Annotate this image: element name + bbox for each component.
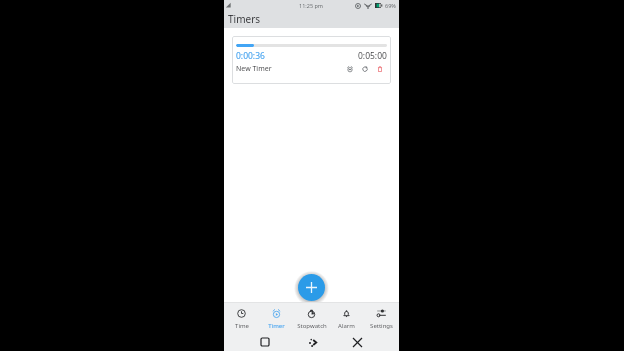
button[interactable]: Delete timer <box>374 63 386 75</box>
staticText: Timers <box>228 12 261 26</box>
staticText: New Timer <box>236 64 272 74</box>
staticText: 0:05:00 <box>358 50 387 62</box>
staticText: Settings <box>370 322 393 330</box>
button[interactable]: Add timer <box>298 274 325 301</box>
button[interactable]: Timers <box>224 11 399 28</box>
button[interactable]: Stopwatch <box>294 302 329 333</box>
staticText: Alarm <box>338 322 355 330</box>
button[interactable]: Close <box>342 333 372 351</box>
button[interactable]: Reset timer <box>359 63 371 75</box>
button[interactable]: Recents <box>250 333 280 351</box>
button[interactable]: Home <box>297 333 327 351</box>
staticText: 69% <box>385 2 396 9</box>
staticText: 0:00:36 <box>236 50 265 62</box>
staticText: Stopwatch <box>297 322 327 330</box>
button[interactable]: Time <box>224 302 259 333</box>
staticText: 11:25 pm <box>299 2 324 9</box>
staticText: Timer <box>268 322 285 330</box>
button[interactable]: Settings <box>364 302 399 333</box>
staticText: Time <box>235 322 249 330</box>
button[interactable]: Timer <box>259 302 294 333</box>
button[interactable]: 0:00:36 <box>232 36 391 84</box>
button[interactable]: Add a minute <box>344 63 356 75</box>
button[interactable]: Alarm <box>329 302 364 333</box>
